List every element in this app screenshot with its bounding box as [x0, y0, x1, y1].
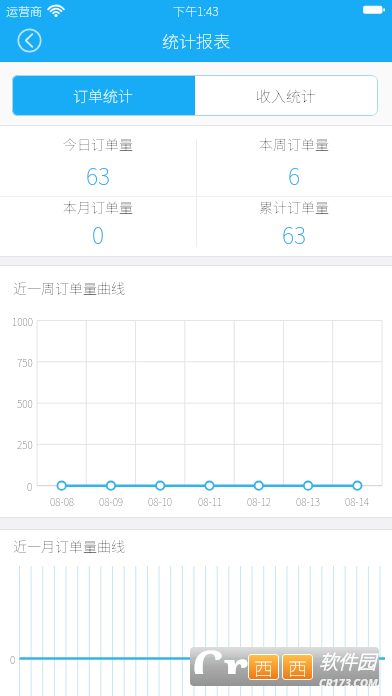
staticText: 500	[17, 396, 33, 410]
staticText: 1000	[12, 314, 33, 328]
staticText: 收入统计	[256, 85, 317, 107]
button[interactable]	[17, 28, 42, 53]
button[interactable]: 本周订单量	[196, 126, 392, 196]
staticText: 08-09	[99, 494, 124, 508]
staticText: 近一月订单量曲线	[13, 536, 125, 556]
staticText: 08-14	[345, 494, 370, 508]
staticText: 0	[10, 652, 16, 666]
staticText: 运营商	[6, 2, 43, 19]
staticText: 0	[27, 479, 33, 493]
staticText: 08-13	[296, 494, 321, 508]
button[interactable]: 收入统计	[195, 75, 378, 116]
staticText: 63	[86, 158, 110, 191]
button[interactable]: 本月订单量	[0, 197, 196, 256]
staticText: 6	[288, 158, 300, 191]
staticText: Cr	[192, 635, 249, 674]
staticText: 0	[92, 217, 104, 250]
staticText: 订单统计	[73, 85, 134, 107]
button[interactable]: 今日订单量	[0, 126, 196, 196]
staticText: 08-11	[198, 494, 223, 508]
staticText: 下午1:43	[173, 2, 219, 19]
staticText: CR173.COM	[319, 675, 378, 686]
staticText: 250	[17, 437, 33, 451]
staticText: 本月订单量	[63, 197, 133, 217]
staticText: 累计订单量	[259, 197, 329, 217]
staticText: 近一周订单量曲线	[13, 278, 125, 298]
staticText: 08-08	[50, 494, 75, 508]
staticText: 08-12	[247, 494, 272, 508]
staticText: 西	[254, 654, 274, 680]
staticText: 750	[17, 355, 33, 369]
staticText: 08-10	[148, 494, 173, 508]
staticText: 软件园	[319, 647, 377, 675]
button[interactable]: 累计订单量	[196, 197, 392, 256]
button[interactable]: 订单统计	[12, 75, 195, 116]
staticText: 今日订单量	[63, 134, 133, 154]
staticText: 统计报表	[162, 28, 230, 53]
staticText: 西	[288, 654, 308, 680]
staticText: 本周订单量	[259, 134, 329, 154]
staticText: 63	[282, 217, 306, 250]
